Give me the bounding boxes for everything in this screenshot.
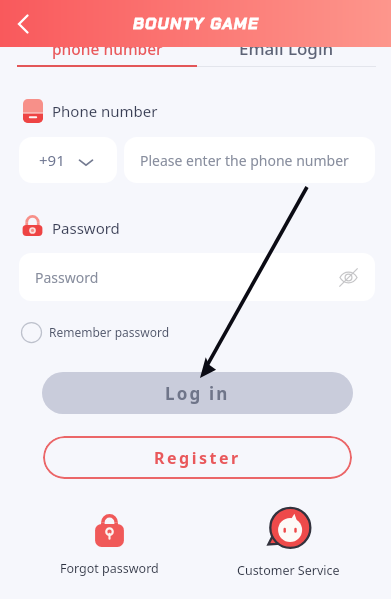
staticText: Remember password [49, 324, 170, 340]
staticText: Register [154, 447, 241, 469]
button[interactable]: Email Login [196, 36, 376, 60]
button[interactable]: Register [43, 436, 352, 479]
staticText: Log in [165, 382, 230, 405]
staticText: Please enter the phone number [140, 151, 349, 170]
button[interactable]: phone number [17, 36, 197, 60]
button[interactable]: +91 [19, 137, 117, 183]
staticText: phone number [52, 38, 163, 59]
staticText: BOUNTY GAME [133, 13, 259, 34]
staticText: Phone number [52, 101, 158, 121]
button[interactable]: Forgot password [44, 514, 174, 577]
button[interactable]: Customer Service [222, 509, 355, 579]
button[interactable]: Log in [42, 372, 353, 414]
staticText: Forgot password [60, 560, 159, 577]
button[interactable]: Show password [335, 264, 361, 290]
button[interactable]: Please enter the phone number [124, 137, 375, 183]
staticText: +91 [39, 150, 65, 170]
staticText: Password [35, 268, 99, 287]
staticText: Password [52, 218, 120, 238]
staticText: Email Login [239, 37, 334, 60]
button[interactable]: Back [4, 5, 42, 43]
button[interactable]: Remember password [21, 321, 170, 343]
staticText: Customer Service [237, 562, 340, 579]
